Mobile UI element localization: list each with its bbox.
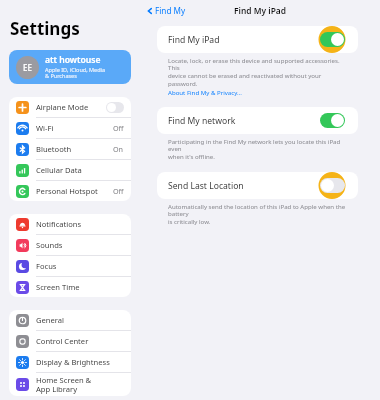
staticText: Find My iPad [168,34,312,46]
staticText: Settings [10,17,80,40]
button[interactable]: Send Last Location [157,172,358,199]
staticText: Display & Brightness [36,357,124,367]
staticText: Bluetooth [36,144,113,154]
button[interactable]: Find My iPad [320,32,345,47]
button[interactable]: EE [9,50,131,84]
staticText: General [36,315,124,325]
staticText: Send Last Location [168,180,312,192]
staticText: Participating in the Find My network let… [168,137,348,161]
staticText: EE [23,62,32,73]
staticText: Off [113,123,124,133]
button[interactable]: Wi-Fi [9,118,131,139]
button[interactable]: Display & Brightness [9,352,131,373]
button[interactable]: Find My network [320,113,345,128]
button[interactable]: Cellular Data [9,160,131,181]
staticText: Screen Time [36,282,124,292]
staticText: Apple ID, iCloud, Media & Purchases [45,66,106,80]
button[interactable]: Bluetooth [9,139,131,160]
staticText: Wi-Fi [36,123,113,133]
button[interactable]: Personal Hotspot [9,181,131,201]
staticText: Focus [36,261,124,271]
staticText: Find My iPad [234,5,286,16]
button[interactable]: Find My iPad [157,26,358,53]
button[interactable]: About Find My & Privacy... [168,88,242,96]
button[interactable]: General [9,310,131,331]
staticText: Personal Hotspot [36,186,113,196]
staticText: Sounds [36,240,124,250]
staticText: att howtouse [45,54,101,66]
staticText: Find My [155,5,186,16]
staticText: Automatically send the location of this … [168,202,348,226]
button[interactable]: Screen Time [9,277,131,297]
staticText: Notifications [36,219,124,229]
button[interactable]: Control Center [9,331,131,352]
staticText: On [113,144,124,154]
button[interactable]: Home Screen & App Library [9,373,131,396]
button[interactable]: Send Last Location [320,178,345,193]
staticText: Find My network [168,115,312,127]
button[interactable]: Find My network [157,107,358,134]
staticText: Airplane Mode [36,102,106,112]
staticText: Off [113,186,124,196]
button[interactable]: Notifications [9,214,131,235]
staticText: Control Center [36,336,124,346]
button[interactable]: Focus [9,256,131,277]
staticText: Locate, lock, or erase this device and s… [168,56,348,88]
staticText: Home Screen & App Library [36,375,124,394]
button[interactable]: Airplane Mode [9,97,131,118]
staticText: Cellular Data [36,165,124,175]
button[interactable]: Sounds [9,235,131,256]
button[interactable]: Find My [146,5,186,16]
